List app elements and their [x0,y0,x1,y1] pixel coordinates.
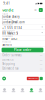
button[interactable]: Delivery address [0,30,45,35]
staticText: Email address [2,19,12,20]
staticText: verde [2,7,13,13]
staticText: +1 555 0134 [2,26,22,30]
button[interactable]: Orders [27,85,36,95]
button[interactable]: Place order [2,48,43,52]
staticText: + [40,8,42,12]
staticText: — [40,53,43,57]
staticText: Items (3) [2,58,14,61]
staticText: Delivery address [2,30,15,32]
button[interactable]: Promo code [0,41,45,47]
staticText: 88 Market St [2,32,18,35]
staticText: jordan@mail.com [2,20,24,24]
staticText: — [40,67,43,70]
button[interactable]: Menu [33,8,37,12]
button[interactable]: Cart [40,77,43,80]
staticText: LIMITED OFFER [28,78,38,79]
staticText: Visa ·· 4821 [2,37,19,41]
staticText: Phone number [2,24,13,26]
button[interactable]: Items (3) [0,57,45,62]
button[interactable]: Email address [0,19,45,24]
button[interactable]: Account [36,85,45,95]
button[interactable]: Confirmed [2,77,6,80]
button[interactable]: Order summary [0,53,45,57]
staticText: Payment method [2,35,13,37]
staticText: Full name [2,13,8,15]
staticText: — [40,58,43,61]
staticText: — [40,62,43,66]
staticText: 9:41 [3,2,10,5]
button[interactable]: LIMITED OFFER [27,77,39,80]
staticText: ☰ [34,8,36,11]
button[interactable]: Add [39,8,43,12]
button[interactable]: Browse [9,85,18,95]
button[interactable]: Payment method [0,35,45,41]
button[interactable]: Home [0,85,9,95]
button[interactable]: Estimated tax [0,66,45,71]
button[interactable]: Shipping [0,62,45,66]
staticText: Promo code [2,41,11,43]
button[interactable]: Full name [0,13,45,19]
staticText: Order summary [2,53,21,57]
staticText: Estimated tax [2,67,18,70]
button[interactable]: Phone number [0,24,45,30]
staticText: SAVE10 [2,43,12,46]
staticText: Shipping [2,62,15,66]
button[interactable]: Scan [18,85,27,95]
staticText: Jordan Avery [2,15,19,18]
staticText: Place order [14,48,31,52]
